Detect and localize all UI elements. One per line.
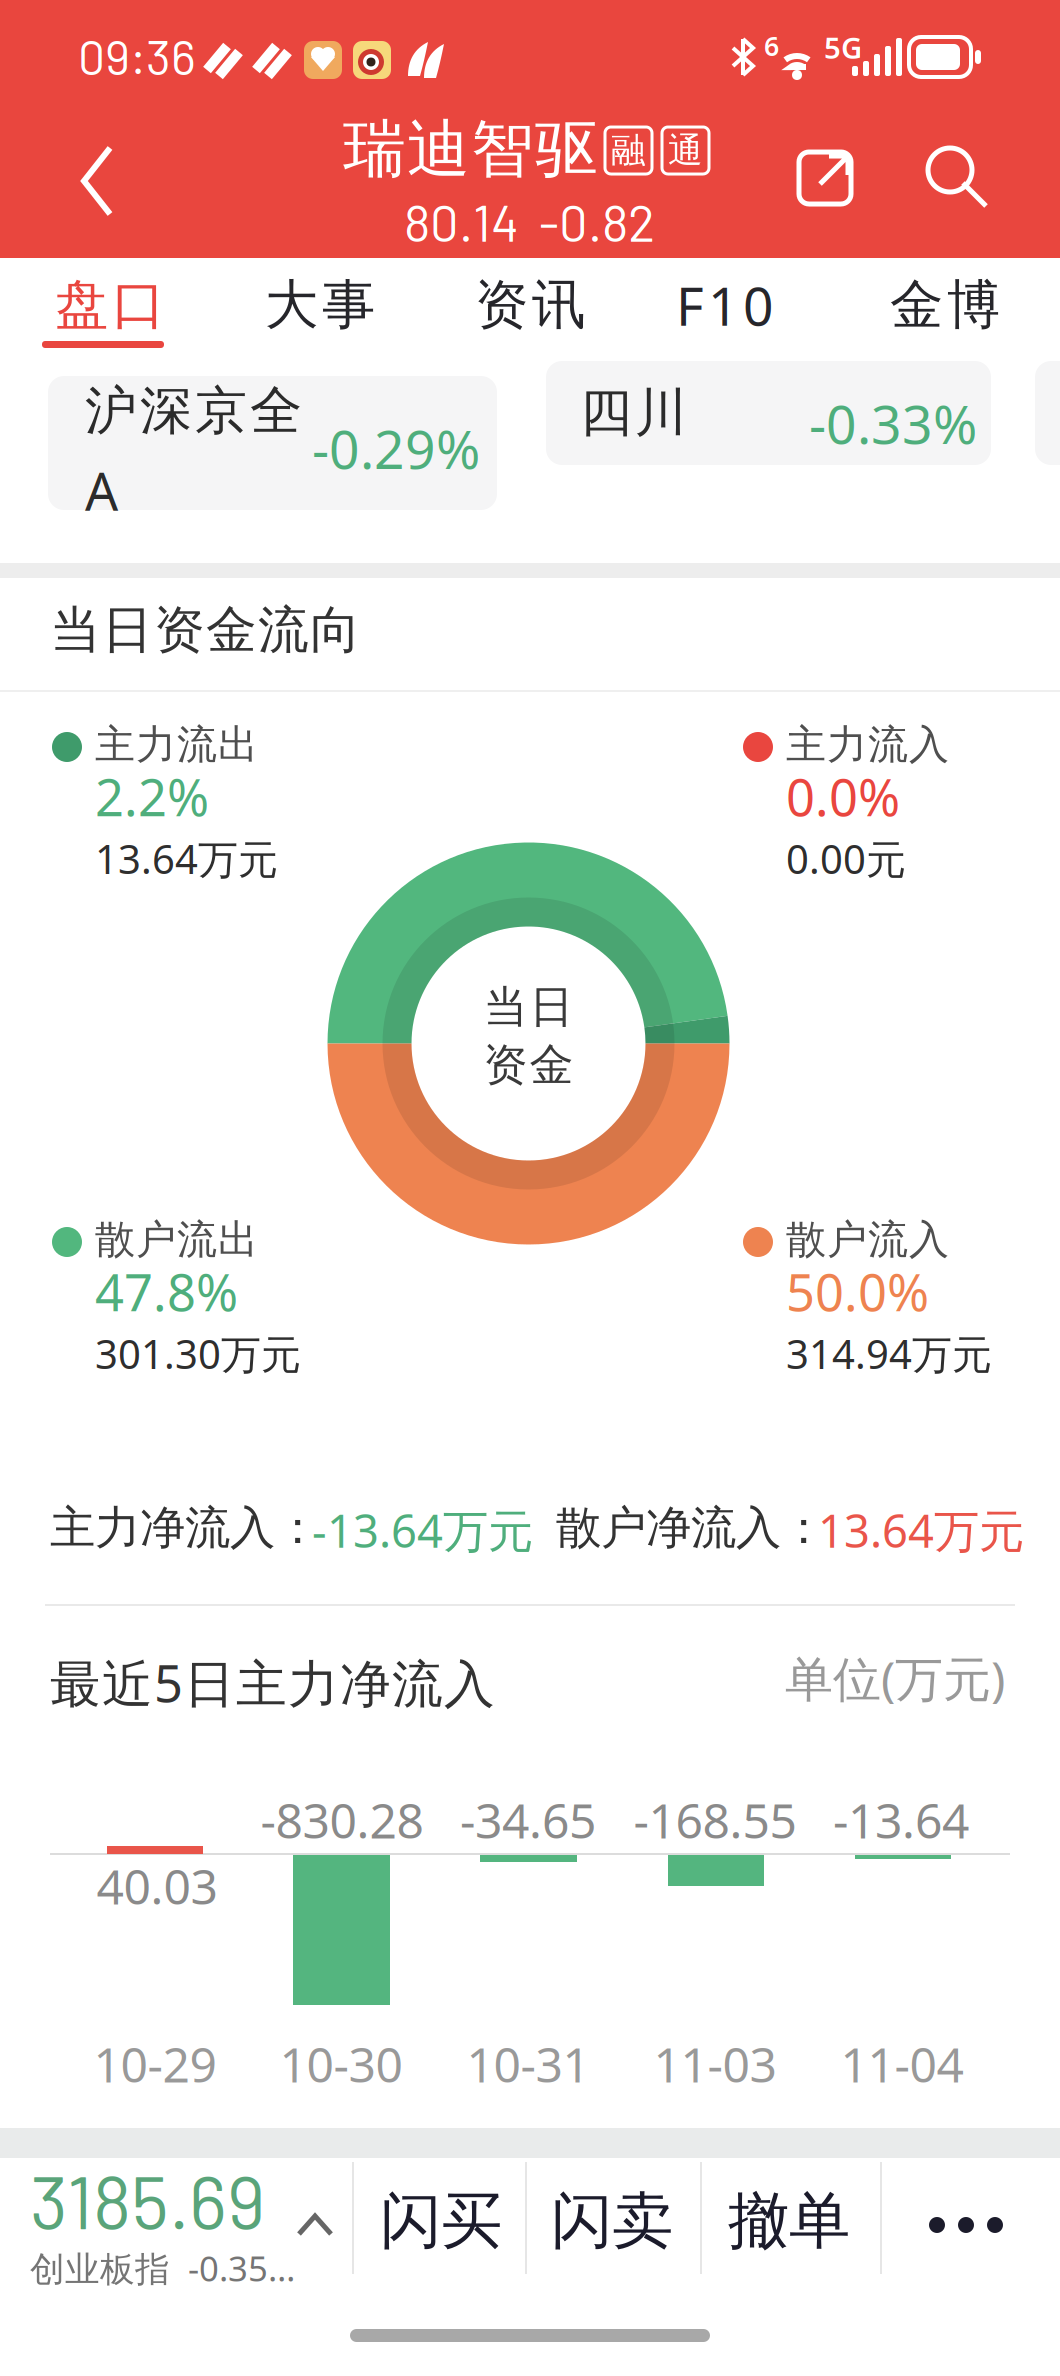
staticText: 09:36 bbox=[78, 27, 196, 85]
button[interactable]: More bbox=[906, 2170, 1026, 2280]
button[interactable]: 创业板指 bbox=[0, 2150, 352, 2300]
staticText: 闪卖 bbox=[551, 2183, 673, 2259]
button[interactable]: 四川 bbox=[546, 361, 991, 465]
staticText: F10 bbox=[676, 270, 774, 340]
button[interactable]: Search bbox=[920, 142, 990, 212]
staticText: -168.55 bbox=[633, 1788, 796, 1852]
staticText: 13.64万元 bbox=[95, 832, 278, 885]
staticText: 50.0% bbox=[786, 1258, 929, 1325]
staticText: 盘口 bbox=[55, 272, 165, 338]
staticText: 5G bbox=[824, 28, 862, 67]
staticText: 大事 bbox=[265, 272, 375, 338]
staticText: -0.33% bbox=[809, 388, 977, 459]
button[interactable]: 撤单 bbox=[704, 2166, 874, 2276]
button[interactable]: F10 bbox=[630, 258, 820, 352]
staticText: -34.65 bbox=[460, 1788, 596, 1852]
staticText: 瑞迪智驱 bbox=[343, 111, 598, 188]
button[interactable]: 闪买 bbox=[356, 2166, 526, 2276]
staticText: -830.28 bbox=[260, 1788, 423, 1852]
staticText: 主力流入 bbox=[786, 720, 949, 769]
staticText: 资金 bbox=[483, 1038, 573, 1092]
staticText: 11-04 bbox=[840, 2032, 963, 2096]
staticText: 主力流出 bbox=[95, 720, 258, 769]
button[interactable]: Share bbox=[790, 145, 860, 215]
button[interactable]: 闪卖 bbox=[527, 2166, 697, 2276]
staticText: 单位(万元) bbox=[785, 1646, 1005, 1710]
button[interactable]: Back bbox=[64, 136, 134, 226]
staticText: -13.64 bbox=[833, 1788, 969, 1852]
staticText: 散户流出 bbox=[95, 1215, 258, 1264]
staticText: -0.29% bbox=[312, 413, 480, 484]
staticText: 10-30 bbox=[279, 2032, 402, 2096]
staticText: 3185.69 bbox=[30, 2156, 265, 2244]
staticText: 314.94万元 bbox=[786, 1327, 992, 1380]
staticText: 散户净流入： bbox=[556, 1500, 826, 1556]
staticText: 资讯 bbox=[475, 272, 585, 338]
staticText: 撤单 bbox=[728, 2183, 850, 2259]
staticText: 80.14 -0.82 bbox=[404, 191, 655, 252]
staticText: 金博 bbox=[890, 272, 1000, 338]
staticText: 47.8% bbox=[95, 1258, 238, 1325]
button[interactable]: 盘口 bbox=[15, 258, 205, 352]
staticText: 散户流入 bbox=[786, 1215, 949, 1264]
staticText: 10-29 bbox=[93, 2032, 216, 2096]
staticText: 闪买 bbox=[380, 2183, 502, 2259]
staticText: 301.30万元 bbox=[95, 1327, 301, 1380]
button[interactable]: 大事 bbox=[225, 258, 415, 352]
staticText: 0.00元 bbox=[786, 832, 906, 885]
staticText: 创业板指 -0.35… bbox=[30, 2245, 295, 2291]
staticText: 13.64万元 bbox=[818, 1500, 1024, 1560]
staticText: 当日资金流向 bbox=[50, 599, 361, 661]
button[interactable]: 沪深京全 bbox=[48, 376, 497, 510]
staticText: 0.0% bbox=[786, 763, 900, 830]
staticText: 主力净流入： bbox=[50, 1500, 320, 1556]
staticText: A bbox=[85, 456, 118, 525]
button[interactable]: 金博 bbox=[850, 258, 1040, 352]
staticText: 当日 bbox=[483, 980, 573, 1034]
staticText: 40.03 bbox=[96, 1854, 217, 1918]
staticText: 2.2% bbox=[95, 763, 209, 830]
staticText: -13.64万元 bbox=[312, 1500, 533, 1560]
staticText: 融 bbox=[611, 129, 646, 172]
staticText: 通 bbox=[668, 129, 703, 172]
staticText: 6 bbox=[764, 28, 779, 63]
staticText: 最近5日主力净流入 bbox=[50, 1649, 495, 1716]
staticText: 沪深京全 bbox=[85, 379, 302, 443]
staticText: 11-03 bbox=[653, 2032, 776, 2096]
staticText: 四川 bbox=[580, 381, 687, 445]
staticText: 10-31 bbox=[466, 2032, 589, 2096]
button[interactable]: 资讯 bbox=[435, 258, 625, 352]
